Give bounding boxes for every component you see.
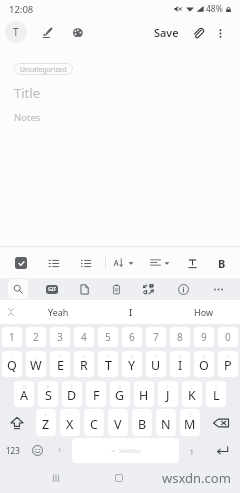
button[interactable]: 2 [26,351,46,377]
staticText: O [199,357,209,374]
staticText: Q [7,357,17,374]
button[interactable]: Stickers [74,279,94,299]
button[interactable]: 5 [98,327,118,347]
button[interactable]: Numbered list [42,252,64,274]
button[interactable]: 8 [170,351,190,377]
staticText: 5 [106,353,110,360]
button[interactable]: 3 [50,351,70,377]
staticText: M [184,416,196,433]
staticText: $ [70,383,74,390]
staticText: ( [191,383,193,390]
staticText: E [57,357,64,374]
button[interactable]: : [108,409,128,436]
staticText: Notes [14,111,41,124]
staticText: J [166,387,170,404]
button[interactable]: Palette [67,22,88,43]
button[interactable]: 4 [74,327,94,347]
staticText: , [59,442,61,452]
button[interactable]: SwiftKey [72,438,179,463]
button[interactable]: Shift [0,409,34,436]
button[interactable]: 9 [194,351,214,377]
button[interactable]: How [167,300,240,324]
button[interactable]: 3 [50,327,70,347]
button[interactable]: @ [14,381,34,407]
button[interactable]: $ [62,381,82,407]
staticText: 6 [129,330,135,344]
button[interactable]: Clipboard [106,279,126,299]
button[interactable]: 0 [218,351,238,377]
button[interactable]: * [36,409,56,436]
button[interactable]: 123 [0,438,26,463]
staticText: 2 [33,330,39,344]
button[interactable]: Checklist [9,251,32,274]
button[interactable]: ; [132,409,152,436]
staticText: : [117,411,119,418]
button[interactable]: Save [151,20,182,45]
button[interactable]: " [60,409,80,436]
button[interactable]: Period [179,438,204,463]
staticText: R [80,357,88,374]
button[interactable]: ( [182,381,202,407]
button[interactable]: Settings [173,279,193,299]
button[interactable]: Translate [138,279,158,299]
button[interactable]: More [208,279,228,299]
button[interactable]: Bulleted list [74,252,96,274]
button[interactable]: More options [213,26,227,40]
staticText: D [67,387,77,404]
button[interactable]: Emoji [26,438,48,463]
button[interactable]: Pen [38,22,59,43]
button[interactable]: 6 [122,351,142,377]
button[interactable]: Enter [204,438,240,463]
button[interactable]: 1 [2,327,22,347]
button[interactable]: Yeah [22,300,94,324]
button[interactable]: Recents [40,463,71,493]
staticText: N [161,416,171,433]
staticText: Z [42,416,50,433]
button[interactable]: 5 [98,351,118,377]
button[interactable]: # [38,381,58,407]
button[interactable]: Search [8,279,28,299]
staticText: C [90,416,98,433]
button[interactable]: 8 [170,327,190,347]
staticText: @ [22,383,27,390]
button[interactable]: ? [180,409,200,436]
staticText: 7 [154,353,158,360]
staticText: 5 [105,330,111,344]
button[interactable]: Expand toolbar [0,300,22,324]
button[interactable]: ' [84,409,104,436]
button[interactable]: 6 [122,327,142,347]
staticText: B [218,256,226,271]
staticText: Save [154,25,179,40]
button[interactable]: Align [150,253,170,272]
button[interactable]: 1 [2,351,22,377]
button[interactable]: Comma [48,438,72,463]
staticText: B [138,416,147,433]
button[interactable]: GIF [42,279,62,299]
button[interactable]: Underline [181,252,203,274]
button[interactable]: Attach [188,23,208,43]
staticText: ! [165,411,167,418]
button[interactable]: + [158,381,178,407]
button[interactable]: 4 [74,351,94,377]
staticText: ) [215,383,217,390]
staticText: 2 [34,353,38,360]
button[interactable]: ! [156,409,176,436]
button[interactable]: 9 [194,327,214,347]
button[interactable]: _ [86,381,106,407]
button[interactable]: - [134,381,154,407]
button[interactable]: & [110,381,130,407]
staticText: 3 [57,330,63,344]
button[interactable]: Text mode [5,21,27,43]
button[interactable]: I [94,300,167,324]
button[interactable]: 7 [146,351,166,377]
button[interactable]: 0 [218,327,238,347]
button[interactable]: Backspace [202,409,240,436]
button[interactable]: 7 [146,327,166,347]
button[interactable]: Uncategorized [14,63,73,75]
button[interactable]: ) [206,381,226,407]
button[interactable]: 2 [26,327,46,347]
button[interactable]: Font size [114,253,134,272]
button[interactable]: Bold [211,252,233,274]
staticText: ! [191,448,193,458]
button[interactable]: Home [103,463,134,493]
